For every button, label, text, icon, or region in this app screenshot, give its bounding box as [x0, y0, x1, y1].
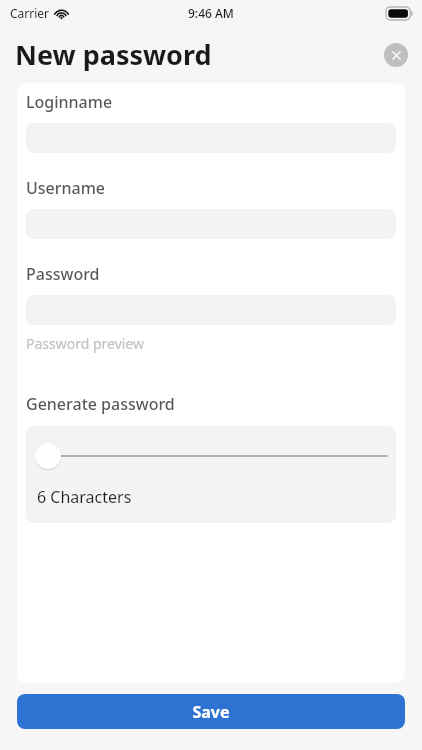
staticText: New password: [15, 36, 212, 73]
staticText: Save: [192, 701, 230, 723]
button[interactable]: Close: [384, 43, 408, 67]
staticText: Password: [26, 263, 100, 285]
staticText: Password preview: [26, 334, 145, 353]
staticText: Generate password: [26, 393, 175, 415]
staticText: 9:46 AM: [188, 5, 234, 21]
button[interactable]: [26, 426, 396, 486]
staticText: Loginname: [26, 91, 113, 113]
staticText: Username: [26, 177, 106, 199]
staticText: 6 Characters: [37, 486, 132, 508]
staticText: Carrier: [10, 5, 50, 21]
button[interactable]: Save: [17, 694, 405, 729]
